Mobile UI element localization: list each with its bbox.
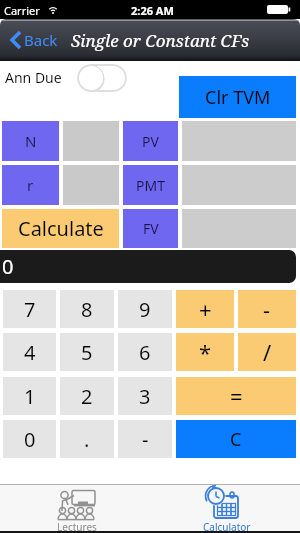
staticText: 3	[139, 383, 151, 410]
staticText: 9	[139, 296, 151, 323]
staticText: 0	[24, 426, 36, 453]
button[interactable]: Back	[4, 27, 64, 53]
staticText: PMT	[136, 176, 165, 195]
button[interactable]: FV	[123, 209, 178, 248]
button[interactable]: 5	[60, 333, 114, 371]
staticText: =	[230, 381, 243, 411]
button[interactable]: .	[60, 420, 114, 458]
button[interactable]: =	[176, 377, 296, 415]
staticText: +	[199, 294, 212, 324]
staticText: N	[25, 131, 37, 151]
staticText: 2	[81, 383, 93, 410]
staticText: /	[263, 337, 272, 367]
staticText: -	[263, 294, 271, 324]
button[interactable]: 8	[60, 290, 114, 328]
staticText: 1	[24, 383, 36, 410]
staticText: 0	[2, 253, 14, 280]
button[interactable]: +	[176, 290, 234, 328]
button[interactable]: 0	[3, 420, 56, 458]
button[interactable]: r	[2, 165, 59, 205]
staticText: 5	[81, 339, 93, 366]
staticText: 4	[24, 339, 36, 366]
staticText: Calculate	[18, 215, 104, 242]
staticText: Back	[24, 30, 58, 50]
staticText: .	[84, 426, 90, 453]
button[interactable]: Lectures	[25, 485, 125, 533]
button[interactable]: 6	[118, 333, 172, 371]
button[interactable]: Calculate	[2, 209, 119, 248]
button[interactable]: *	[176, 333, 234, 371]
button[interactable]: C	[176, 420, 296, 458]
button[interactable]: Calculator	[175, 485, 275, 533]
button[interactable]: -	[118, 420, 172, 458]
staticText: Carrier	[4, 3, 40, 18]
button[interactable]: Clr TVM	[179, 76, 296, 118]
staticText: Clr TVM	[205, 85, 271, 110]
button[interactable]: 2	[60, 377, 114, 415]
button[interactable]: PMT	[123, 165, 178, 205]
staticText: 6	[139, 339, 151, 366]
staticText: Lectures	[57, 520, 97, 533]
button[interactable]: 1	[3, 377, 56, 415]
button[interactable]	[77, 64, 127, 92]
staticText: Single or Constant CFs	[71, 29, 250, 52]
staticText: 2:26 AM	[131, 3, 174, 18]
staticText: -	[142, 426, 149, 453]
staticText: FV	[143, 219, 159, 238]
button[interactable]: N	[2, 121, 59, 161]
staticText: PV	[142, 132, 159, 151]
staticText: Calculator	[203, 520, 251, 533]
staticText: Ann Due	[5, 68, 62, 87]
staticText: 8	[81, 296, 93, 323]
button[interactable]: PV	[123, 121, 178, 161]
staticText: C	[230, 427, 242, 452]
staticText: r	[27, 175, 34, 195]
button[interactable]: /	[238, 333, 296, 371]
button[interactable]: 4	[3, 333, 56, 371]
button[interactable]: 3	[118, 377, 172, 415]
staticText: 7	[24, 296, 36, 323]
staticText: *	[199, 337, 212, 367]
button[interactable]: -	[238, 290, 296, 328]
button[interactable]: 9	[118, 290, 172, 328]
button[interactable]: 7	[3, 290, 56, 328]
